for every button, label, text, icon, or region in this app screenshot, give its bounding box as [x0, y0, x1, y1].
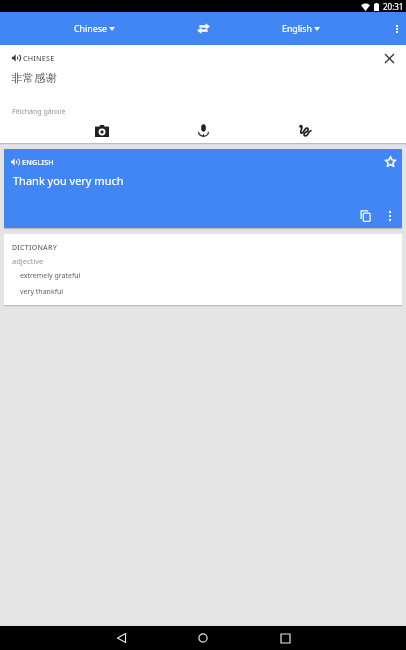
button[interactable]: Clear: [372, 45, 406, 71]
staticText: very thankful: [20, 287, 64, 297]
button[interactable]: English: [221, 12, 380, 45]
staticText: 20:31: [383, 1, 404, 12]
button[interactable]: Voice input: [153, 124, 254, 137]
staticText: English: [282, 23, 312, 35]
button[interactable]: extremely grateful: [4, 268, 402, 285]
staticText: adjective: [12, 256, 44, 266]
button[interactable]: Save translation: [379, 150, 401, 172]
staticText: DICTIONARY: [12, 243, 57, 253]
staticText: 非常感谢: [11, 71, 57, 85]
button[interactable]: Handwriting input: [254, 124, 355, 137]
staticText: CHINESE: [23, 53, 55, 63]
staticText: Chinese: [74, 23, 107, 35]
button[interactable]: Recent apps: [265, 626, 305, 650]
button[interactable]: Back: [101, 626, 141, 650]
staticText: ENGLISH: [22, 157, 54, 167]
button[interactable]: Camera input: [51, 125, 153, 137]
button[interactable]: More options: [385, 12, 406, 45]
button[interactable]: More options: [379, 205, 401, 227]
button[interactable]: very thankful: [4, 284, 402, 301]
button[interactable]: ENGLISH: [4, 149, 402, 228]
button[interactable]: Copy translation: [354, 205, 376, 227]
staticText: Fēicháng gǎnxiè: [12, 107, 66, 117]
staticText: extremely grateful: [20, 271, 81, 281]
button[interactable]: Home: [183, 626, 223, 650]
button[interactable]: Chinese: [0, 12, 189, 45]
button[interactable]: Swap languages: [185, 12, 221, 45]
staticText: Thank you very much: [13, 173, 124, 188]
